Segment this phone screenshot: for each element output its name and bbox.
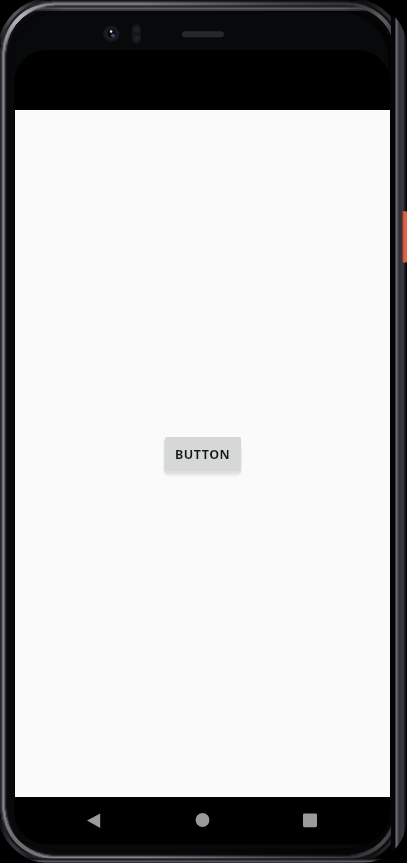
button[interactable]: BUTTON xyxy=(165,437,241,471)
button[interactable]: Back xyxy=(70,796,118,844)
button[interactable]: Recents xyxy=(286,796,334,844)
button[interactable]: Home xyxy=(179,796,227,844)
staticText: BUTTON xyxy=(175,446,231,463)
